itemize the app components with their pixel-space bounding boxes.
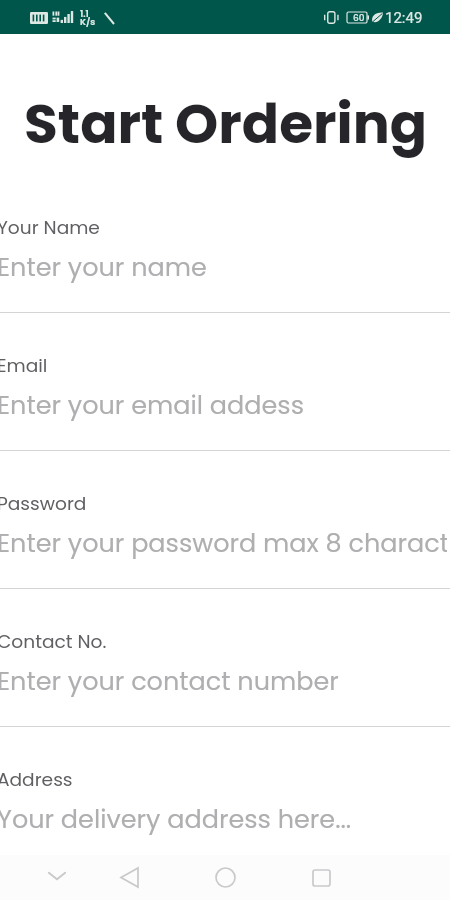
staticText: 1.1 — [80, 8, 89, 21]
staticText: Enter your password max 8 characters — [0, 525, 447, 561]
button[interactable]: Back — [105, 855, 153, 900]
staticText: Start Ordering — [24, 85, 428, 162]
button[interactable]: Recent apps — [297, 855, 345, 900]
staticText: Enter your name — [0, 249, 207, 285]
staticText: 60 — [353, 12, 365, 25]
staticText: Password — [0, 490, 87, 516]
staticText: 12:49 — [385, 9, 423, 27]
staticText: Enter your contact number — [0, 663, 339, 699]
button[interactable]: Hide keyboard — [32, 855, 81, 900]
button[interactable]: Home — [201, 855, 249, 900]
staticText: K/s — [80, 16, 96, 29]
staticText: Your Name — [0, 214, 100, 240]
button[interactable]: Address — [0, 752, 450, 890]
staticText: Contact No. — [0, 628, 107, 654]
staticText: Email — [0, 352, 48, 378]
button[interactable]: Contact No. — [0, 614, 450, 752]
staticText: Address — [0, 766, 73, 792]
staticText: Your delivery address here... — [0, 801, 352, 837]
staticText: Enter your email addess — [0, 387, 304, 423]
button[interactable]: Your Name — [0, 200, 450, 338]
button[interactable]: Email — [0, 338, 450, 476]
button[interactable]: Password — [0, 476, 450, 614]
